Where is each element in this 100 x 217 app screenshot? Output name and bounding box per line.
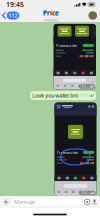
staticText: en línea	[44, 17, 57, 23]
staticText: 19:45	[6, 0, 24, 9]
button[interactable]: Back	[0, 12, 19, 19]
staticText: Price	[43, 8, 59, 17]
staticText: 19:45	[80, 85, 89, 88]
button[interactable]: Attach	[0, 199, 9, 205]
staticText: 19:45	[80, 191, 89, 195]
staticText: 112	[8, 12, 17, 19]
button[interactable]: Camera	[84, 199, 90, 205]
staticText: Mensaje	[14, 198, 35, 206]
staticText: Transacción	[57, 150, 78, 155]
staticText: Transacción	[56, 43, 77, 48]
staticText: 19:45	[79, 94, 88, 97]
button[interactable]: Voice message	[92, 199, 100, 205]
button[interactable]: Mensaje	[11, 198, 82, 206]
button[interactable]: Contact info	[88, 11, 100, 20]
staticText: Look you wallet bro	[32, 92, 78, 99]
